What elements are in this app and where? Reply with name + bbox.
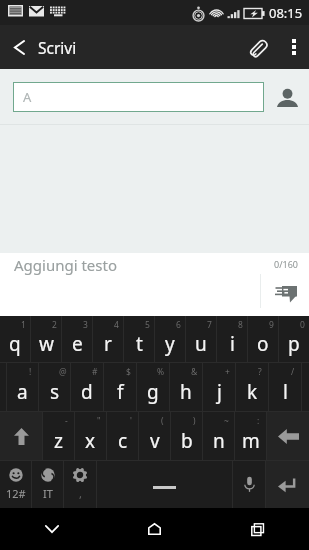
button[interactable]: 9 [248,316,278,362]
staticText: A [23,88,32,106]
button[interactable]: & [170,363,202,411]
button[interactable]: Enter [266,461,309,508]
staticText: / [291,366,295,378]
button[interactable]: A [13,82,264,112]
staticText: ' [130,415,132,427]
button[interactable]: - [43,412,74,460]
staticText: ) [193,415,196,427]
button[interactable]: Attach [235,25,279,69]
button[interactable]: / [269,363,301,411]
staticText: : [257,415,260,427]
button[interactable]: 6 [155,316,185,362]
staticText: h [180,379,192,405]
staticText: x [85,428,96,454]
staticText: a [17,379,28,405]
button[interactable]: Recents [206,508,309,550]
button[interactable]: 0 [279,316,309,362]
button[interactable]: 5 [124,316,154,362]
staticText: " [97,415,101,427]
staticText: o [257,331,269,357]
button[interactable]: % [137,363,169,411]
button[interactable]: ' [107,412,138,460]
button[interactable]: " [75,412,106,460]
button[interactable]: : [235,412,266,460]
button[interactable]: ) [171,412,202,460]
staticText: u [195,331,207,357]
staticText: Aggiungi testo [14,255,117,275]
staticText: 5 [145,319,150,331]
button[interactable]: 1 [0,316,30,362]
staticText: q [9,331,21,357]
staticText: 3 [83,319,88,331]
button[interactable]: Contacts [271,83,303,111]
staticText: 2 [52,319,57,331]
button[interactable]: @ [39,363,70,411]
staticText: m [242,428,260,454]
staticText: i [230,331,235,357]
button[interactable]: 4 [93,316,123,362]
staticText: 1 [21,319,26,331]
staticText: 0/160 [274,258,298,270]
staticText: 4 [114,319,119,331]
staticText: ( [161,415,164,427]
staticText: r [104,331,112,357]
button[interactable]: Back [0,25,38,69]
button[interactable]: Aggiungi testo [0,253,309,316]
button[interactable]: Back [0,508,103,550]
button[interactable]: Shift [0,412,42,460]
button[interactable]: $ [104,363,136,411]
staticText: p [288,331,300,357]
staticText: @ [59,366,67,378]
staticText: 08:15 [269,4,303,22]
staticText: 7 [207,319,212,331]
staticText: $ [126,366,131,378]
staticText: % [157,366,165,378]
staticText: j [217,379,222,405]
staticText: 9 [269,319,274,331]
staticText: w [39,331,54,357]
button[interactable]: + [203,363,235,411]
staticText: z [54,428,63,454]
staticText: ? [258,366,262,378]
button[interactable]: IT [32,461,63,508]
button[interactable]: Home [103,508,206,550]
staticText: c [118,428,128,454]
staticText: y [165,331,175,357]
button[interactable]: Space [97,461,232,508]
staticText: e [72,331,83,357]
button[interactable]: 2 [31,316,61,362]
staticText: d [81,379,93,405]
button[interactable]: 7 [186,316,216,362]
staticText: 0 [300,319,305,331]
button[interactable]: ~ [203,412,234,460]
button[interactable]: 12# [0,461,31,508]
staticText: k [247,379,258,405]
staticText: b [181,428,193,454]
button[interactable]: # [71,363,103,411]
button[interactable]: ! [7,363,38,411]
button[interactable]: More options [279,25,309,69]
staticText: 8 [238,319,243,331]
button[interactable]: 8 [217,316,247,362]
button[interactable]: 3 [62,316,92,362]
button[interactable]: Send message [261,253,309,316]
staticText: ! [29,366,32,378]
staticText: f [117,379,124,405]
staticText: - [65,415,68,427]
staticText: g [147,379,159,405]
button[interactable]: Backspace [267,412,309,460]
staticText: & [191,366,198,378]
staticText: ~ [224,415,229,427]
staticText: , [79,486,82,501]
staticText: IT [43,486,53,501]
button[interactable]: Voice input [233,461,265,508]
staticText: l [283,379,288,405]
button[interactable]: Settings [64,461,96,508]
button[interactable]: ( [139,412,170,460]
staticText: Scrivi [38,37,77,58]
staticText: s [50,379,60,405]
button[interactable]: ? [236,363,268,411]
staticText: n [213,428,225,454]
